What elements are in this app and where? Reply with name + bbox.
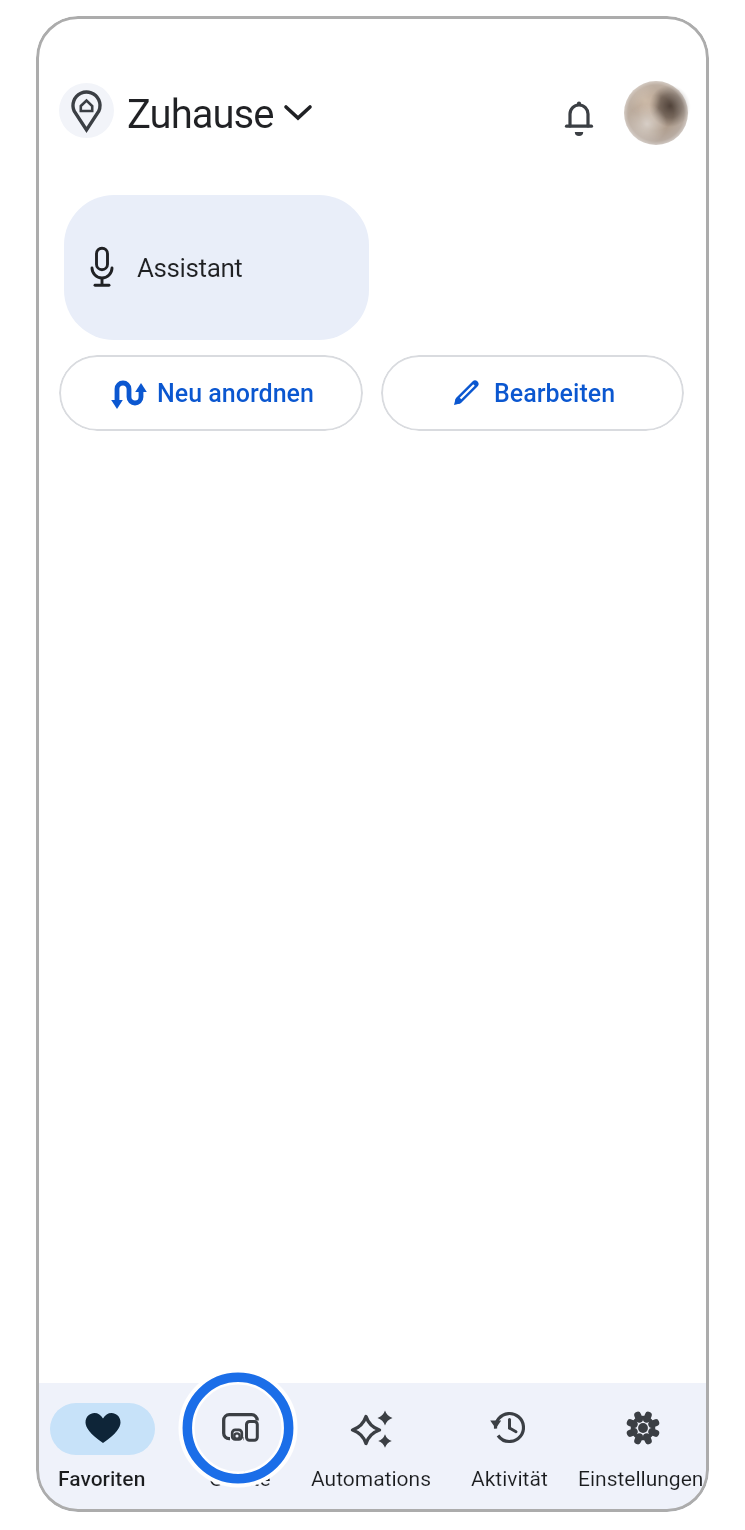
button[interactable] (349, 1406, 395, 1452)
staticText: Geräte (209, 1467, 271, 1492)
button[interactable] (621, 78, 691, 148)
button[interactable] (563, 95, 595, 135)
staticText: Neu anordnen (157, 379, 314, 408)
button[interactable] (220, 1410, 262, 1448)
staticText: Bearbeiten (494, 379, 616, 408)
button[interactable] (489, 1408, 529, 1448)
staticText: Automations (311, 1467, 432, 1492)
staticText: Zuhause (127, 91, 274, 138)
button[interactable]: Zuhause (127, 88, 274, 140)
button[interactable]: Neu anordnen (59, 355, 363, 431)
button[interactable]: Assistant (64, 195, 369, 340)
staticText: Favoriten (58, 1467, 146, 1492)
staticText: Aktivität (471, 1467, 548, 1492)
staticText: Einstellungen (578, 1467, 704, 1492)
button[interactable] (623, 1408, 663, 1448)
button[interactable] (59, 83, 114, 138)
staticText: Assistant (137, 253, 243, 283)
button[interactable]: Bearbeiten (381, 355, 684, 431)
button[interactable] (50, 1403, 155, 1455)
